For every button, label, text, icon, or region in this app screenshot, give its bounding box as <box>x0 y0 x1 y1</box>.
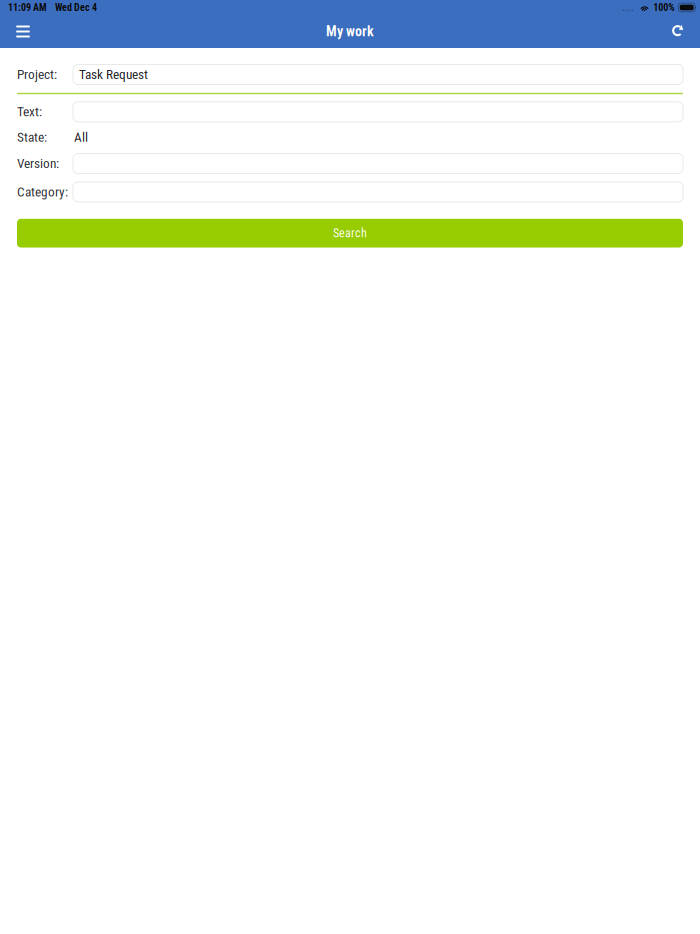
button[interactable]: Refresh <box>654 15 700 48</box>
staticText: Text: <box>17 104 42 120</box>
button[interactable]: Search <box>17 219 683 247</box>
staticText: All <box>74 129 88 145</box>
staticText: State: <box>17 129 47 145</box>
button[interactable]: Menu <box>0 15 46 48</box>
staticText: .... <box>622 1 634 14</box>
staticText: Task Request <box>79 67 148 82</box>
staticText: Search <box>333 226 367 240</box>
staticText: Category: <box>17 184 68 200</box>
staticText: Wed Dec 4 <box>55 2 97 13</box>
staticText: 11:09 AM <box>8 2 47 13</box>
staticText: Version: <box>17 156 59 171</box>
staticText: 100% <box>653 2 674 13</box>
staticText: My work <box>326 23 374 40</box>
staticText: Project: <box>17 67 57 82</box>
